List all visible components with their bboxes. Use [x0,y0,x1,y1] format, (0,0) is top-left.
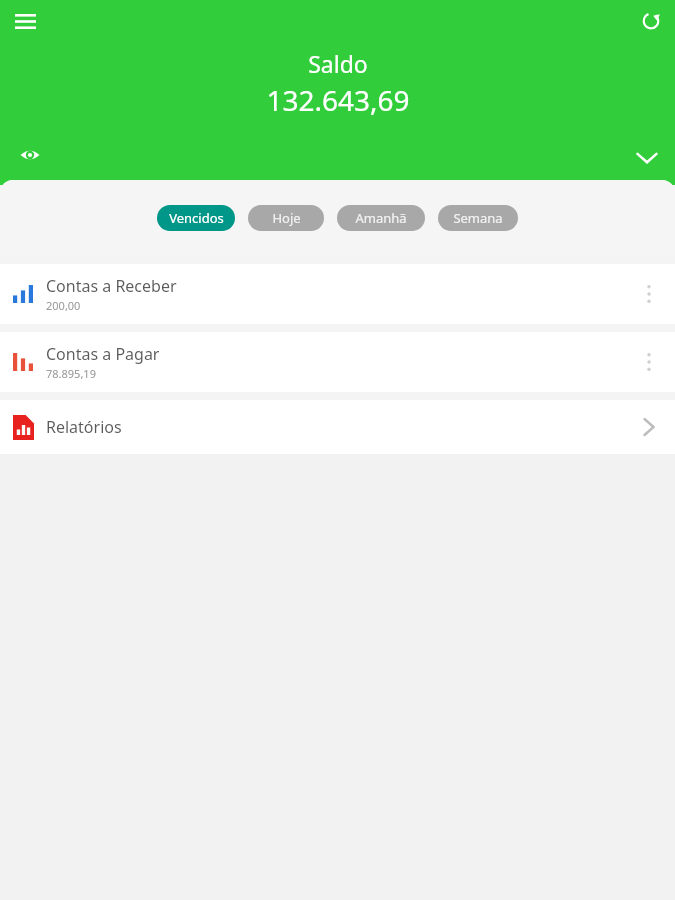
staticText: Relatórios [46,416,122,438]
button[interactable]: Contas a Receber [0,264,675,324]
staticText: Saldo [308,48,368,79]
button[interactable]: Menu [10,6,40,36]
button[interactable]: More options [629,274,669,314]
button[interactable]: Show balance [14,139,46,171]
button[interactable]: Contas a Pagar [0,332,675,392]
staticText: 78.895,19 [46,366,96,381]
staticText: Hoje [272,209,301,227]
button[interactable]: Vencidos [157,205,235,231]
staticText: Amanhã [355,209,407,227]
staticText: Semana [453,209,503,227]
button[interactable]: More options [629,342,669,382]
button[interactable]: Amanhã [337,205,425,231]
button[interactable]: Semana [438,205,518,231]
button[interactable]: Open [629,407,669,447]
button[interactable]: Refresh [636,6,666,36]
staticText: 132.643,69 [266,81,410,119]
staticText: Contas a Receber [46,275,177,297]
button[interactable]: Relatórios [0,400,675,454]
staticText: 200,00 [46,298,81,313]
button[interactable]: Hoje [248,205,324,231]
button[interactable]: Expand [631,141,663,173]
staticText: Contas a Pagar [46,343,160,365]
staticText: Vencidos [169,209,224,227]
